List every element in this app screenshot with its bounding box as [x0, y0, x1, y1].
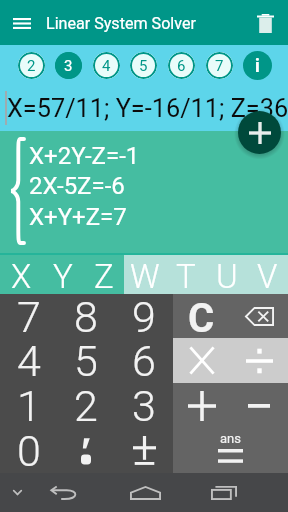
button[interactable]: 1	[0, 383, 57, 428]
button[interactable]: Clear all	[248, 6, 282, 40]
staticText: T	[176, 257, 196, 296]
staticText: 1	[17, 381, 41, 426]
button[interactable]: 7	[0, 294, 57, 338]
button[interactable]: 8	[57, 294, 115, 338]
staticText: Z	[94, 257, 114, 296]
staticText: 0	[17, 426, 41, 471]
staticText: 8	[74, 292, 98, 336]
staticText: W	[130, 257, 160, 296]
staticText: 2	[27, 57, 36, 75]
button[interactable]: Add equation	[238, 111, 281, 154]
button[interactable]: Minus	[230, 383, 288, 428]
button[interactable]: T	[165, 255, 206, 294]
button[interactable]: W	[124, 255, 165, 294]
button[interactable]: 3	[115, 383, 173, 428]
button[interactable]: V	[247, 255, 288, 294]
staticText: 2	[74, 381, 98, 426]
staticText: V	[257, 257, 278, 296]
staticText: ans	[220, 431, 241, 446]
staticText: 6	[177, 57, 186, 75]
staticText: 4	[102, 57, 111, 75]
button[interactable]: 4	[93, 52, 120, 79]
staticText: Y	[53, 257, 73, 296]
staticText: 5	[74, 336, 98, 381]
staticText: 6	[132, 336, 156, 381]
button[interactable]: 4	[0, 338, 57, 383]
button[interactable]: Divide	[230, 338, 288, 383]
staticText: C	[188, 295, 215, 339]
button[interactable]: 0	[0, 428, 57, 473]
button[interactable]: Hide keyboard	[0, 473, 34, 512]
button[interactable]: 5	[57, 338, 115, 383]
staticText: X+2Y-Z=-1	[29, 142, 140, 170]
button[interactable]	[57, 428, 115, 473]
button[interactable]: 5	[130, 52, 157, 79]
button[interactable]: Equals	[173, 428, 288, 473]
button[interactable]: Backspace	[230, 294, 288, 338]
staticText: 3	[64, 57, 73, 75]
button[interactable]: Multiply	[173, 338, 230, 383]
staticText: 7	[215, 57, 224, 75]
button[interactable]: X	[0, 255, 42, 294]
button[interactable]: Recent apps	[204, 473, 244, 512]
staticText: X	[11, 257, 32, 296]
button[interactable]: Plus	[173, 383, 230, 428]
staticText: 4	[17, 336, 41, 381]
button[interactable]: 6	[115, 338, 173, 383]
button[interactable]: U	[206, 255, 247, 294]
button[interactable]: 9	[115, 294, 173, 338]
staticText: Linear System Solver	[46, 14, 196, 33]
button[interactable]	[115, 428, 173, 473]
button[interactable]: 7	[206, 52, 233, 79]
staticText: 3	[132, 381, 156, 426]
button[interactable]: Y	[42, 255, 83, 294]
staticText: X+Y+Z=7	[29, 203, 127, 231]
button[interactable]: Z	[83, 255, 124, 294]
button[interactable]: 2	[18, 52, 45, 79]
button[interactable]: 6	[168, 52, 195, 79]
staticText: 7	[17, 292, 41, 336]
button[interactable]: Open navigation menu	[4, 5, 40, 41]
staticText: 5	[139, 57, 148, 75]
staticText: X=57/11; Y=-16/11; Z=36	[7, 94, 288, 124]
staticText: U	[216, 257, 238, 296]
button[interactable]: 3	[55, 52, 82, 79]
staticText: 2X-5Z=-6	[29, 172, 125, 200]
button[interactable]: 2	[57, 383, 115, 428]
button[interactable]: Clear	[173, 294, 230, 338]
staticText: 9	[132, 292, 156, 336]
button[interactable]: Home	[124, 473, 166, 512]
staticText: i	[255, 55, 260, 76]
button[interactable]: Information	[243, 51, 272, 80]
button[interactable]: Back	[44, 473, 84, 512]
